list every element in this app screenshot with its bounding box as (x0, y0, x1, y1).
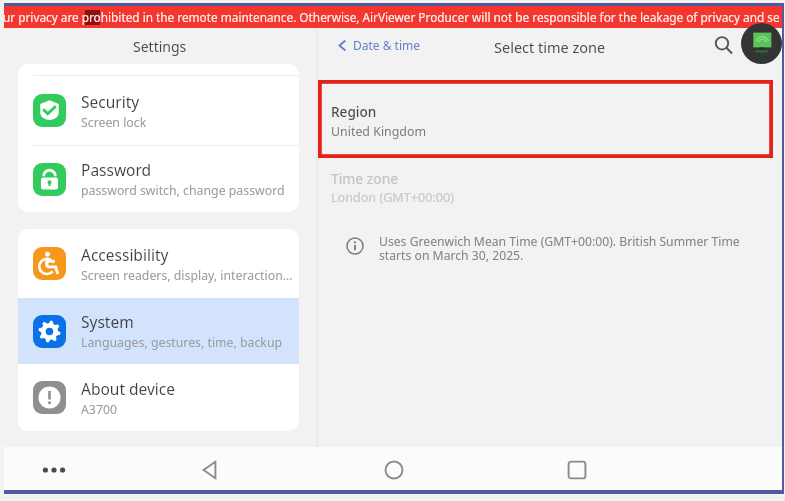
staticText: United Kingdom (331, 123, 427, 140)
staticText: London (GMT+00:00) (331, 189, 454, 206)
staticText: ur privacy are prohibited in the remote … (3, 9, 780, 25)
staticText: Select time zone (494, 37, 606, 57)
button[interactable]: Recents (555, 448, 599, 492)
button[interactable]: Date & time (338, 35, 421, 55)
staticText: Languages, gestures, time, backup (81, 334, 283, 351)
staticText: Password (81, 159, 152, 180)
staticText: A3700 (81, 401, 117, 418)
button[interactable]: Search (708, 29, 736, 57)
staticText: Security (81, 91, 140, 112)
button[interactable]: Accessibility (18, 229, 299, 298)
staticText: Uses Greenwich Mean Time (GMT+00:00). Br… (379, 233, 751, 264)
button[interactable]: Back (188, 448, 232, 492)
staticText: Accessibility (81, 244, 169, 265)
staticText: Screen lock (81, 114, 147, 131)
staticText: About device (81, 378, 176, 399)
staticText: System (81, 311, 134, 332)
staticText: Settings (133, 37, 187, 56)
button[interactable]: Password (18, 146, 299, 212)
staticText: Time zone (331, 169, 399, 188)
button[interactable]: Account (741, 23, 782, 64)
button[interactable]: System (18, 298, 299, 364)
staticText: Date & time (353, 37, 421, 53)
button[interactable]: About device (18, 364, 299, 431)
staticText: Region (331, 102, 377, 121)
button[interactable]: Home (372, 448, 416, 492)
staticText: password switch, change password (81, 182, 285, 199)
button[interactable]: Security (18, 76, 299, 145)
button[interactable]: More (32, 448, 76, 492)
staticText: Screen readers, display, interaction… (81, 267, 293, 284)
